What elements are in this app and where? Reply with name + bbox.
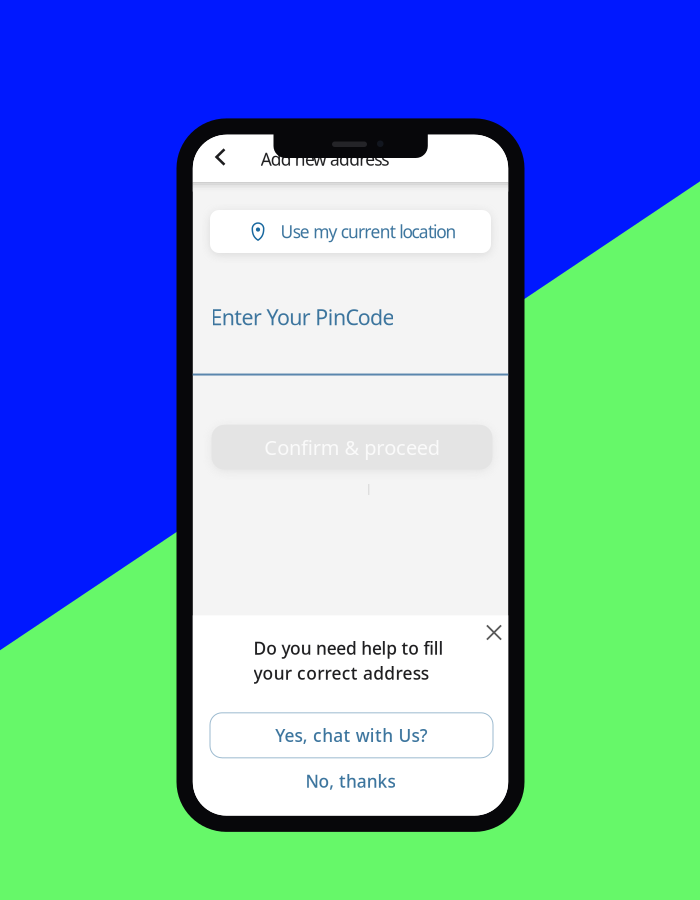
button[interactable]: Close <box>480 618 508 646</box>
button[interactable]: Use my current location <box>210 210 491 253</box>
staticText: No, thanks <box>305 769 395 792</box>
staticText: Enter Your PinCode <box>210 303 394 331</box>
staticText: Add new address <box>261 147 389 170</box>
button[interactable]: Yes, chat with Us? <box>210 713 493 758</box>
staticText: Do you need help to fill <box>253 636 443 659</box>
staticText: Confirm & proceed <box>264 434 440 460</box>
button[interactable]: Confirm & proceed <box>211 425 492 470</box>
staticText: Yes, chat with Us? <box>275 724 428 747</box>
staticText: your correct address <box>253 661 429 684</box>
button[interactable]: Back <box>201 139 239 175</box>
staticText: Use my current location <box>280 220 456 243</box>
button[interactable]: No, thanks <box>193 769 508 793</box>
